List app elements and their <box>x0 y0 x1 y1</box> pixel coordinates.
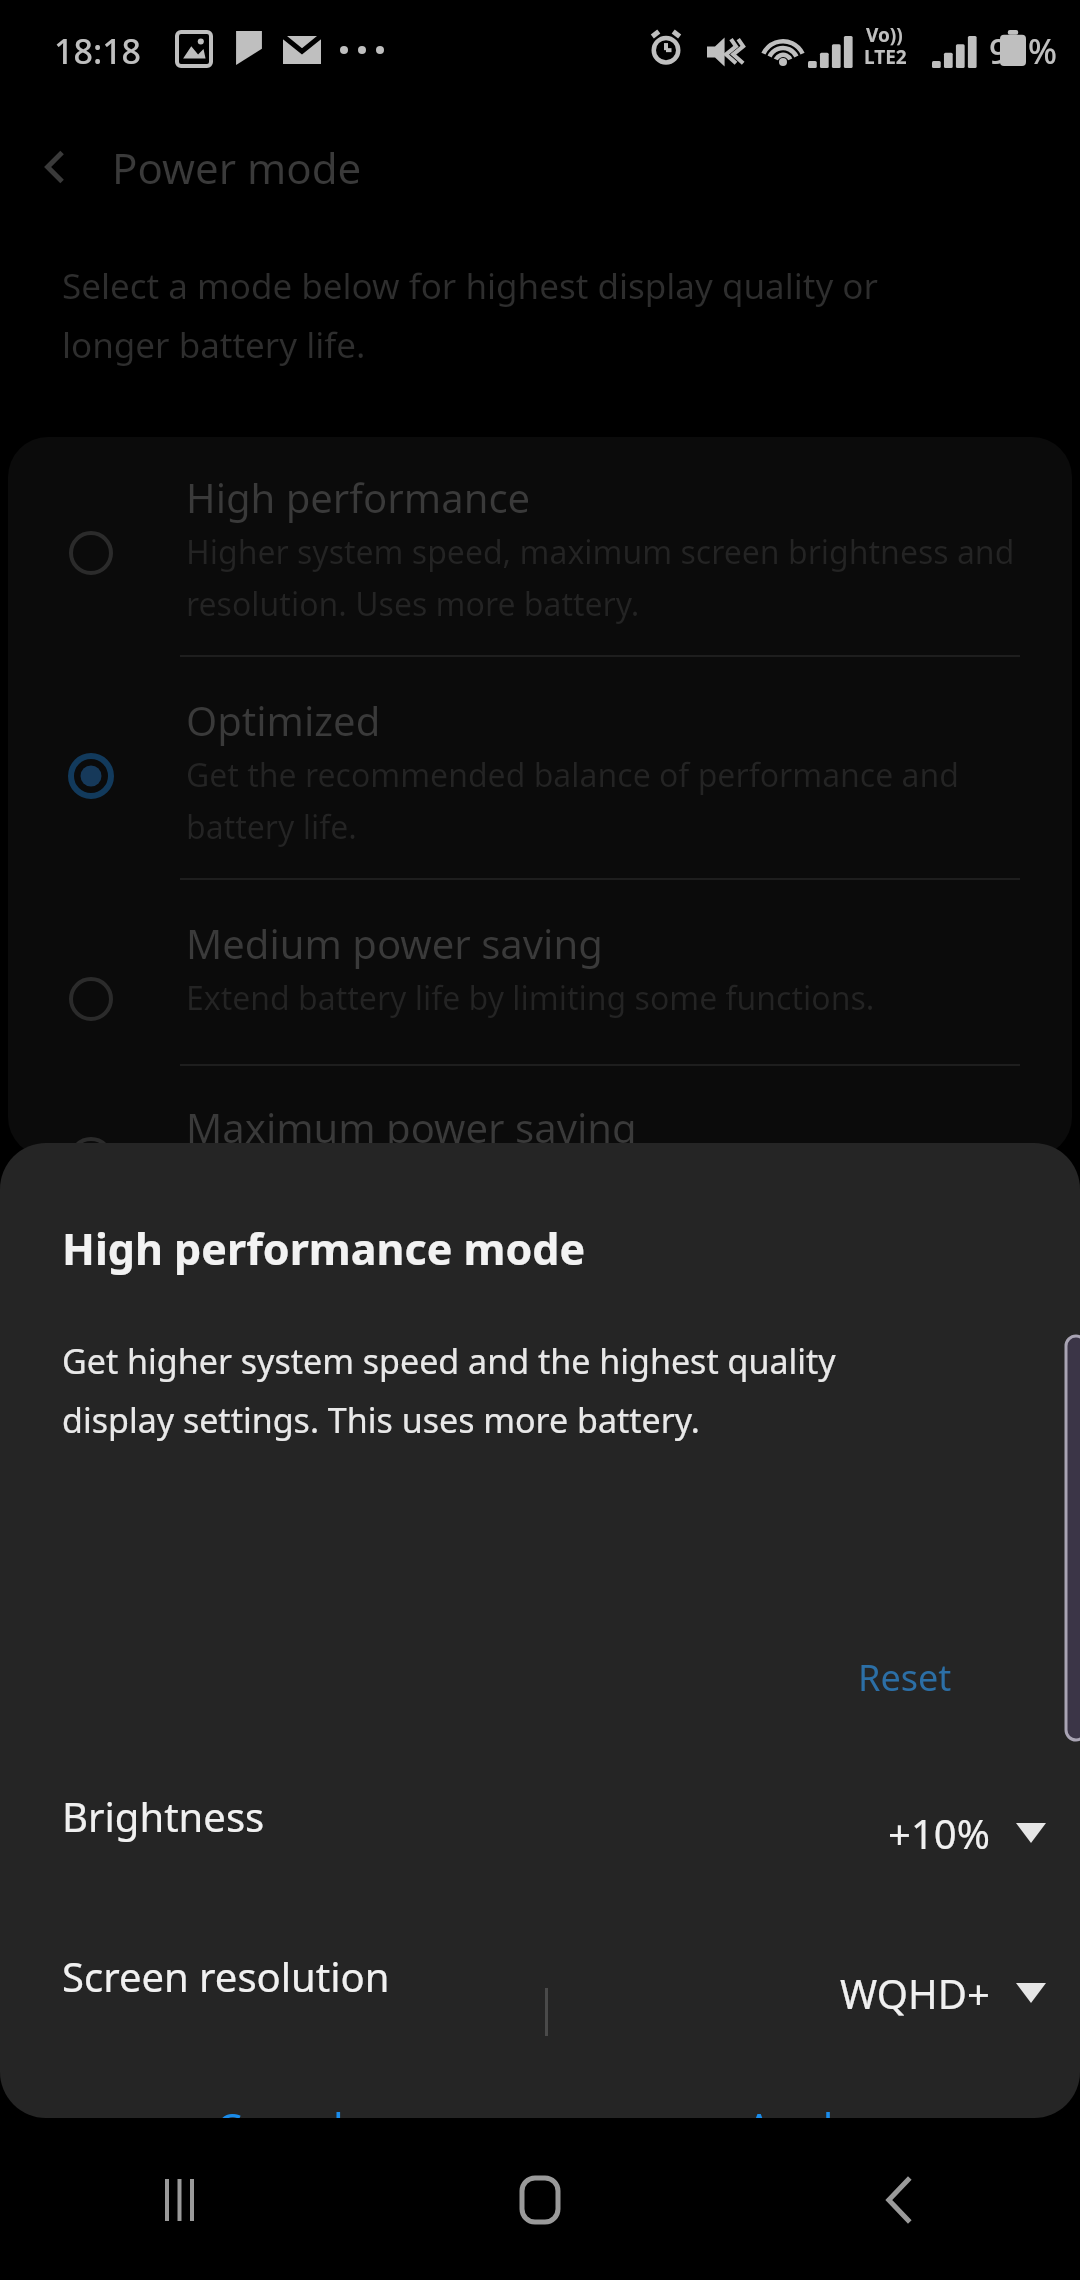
staticText: 18:18 <box>54 28 142 74</box>
staticText: Cancel <box>216 2100 344 2118</box>
staticText: Get higher system speed and the highest … <box>62 1338 1022 1443</box>
staticText: Screen resolution <box>62 1949 390 2003</box>
staticText: High performance mode <box>62 1219 586 1278</box>
staticText: Vo)) <box>866 22 903 48</box>
button[interactable]: Home <box>360 2120 720 2280</box>
staticText: Maximum power saving <box>186 1100 637 1154</box>
button[interactable]: Screen resolution <box>0 1923 1080 2063</box>
button[interactable]: Back <box>0 120 112 214</box>
staticText: Get the recommended balance of performan… <box>186 753 1046 848</box>
button[interactable]: Reset <box>858 1638 952 1716</box>
staticText: Extend battery life by limiting some fun… <box>186 976 1046 1020</box>
staticText: Brightness <box>62 1789 265 1843</box>
staticText: Optimized <box>186 693 381 747</box>
button[interactable]: Optimized <box>8 693 1072 873</box>
staticText: Reset <box>858 1653 952 1702</box>
button[interactable]: Recent apps <box>0 2120 360 2280</box>
staticText: Medium power saving <box>186 916 603 970</box>
staticText: Power mode <box>112 139 362 196</box>
staticText: Higher system speed, maximum screen brig… <box>186 530 1046 625</box>
staticText: LTE2 <box>864 44 907 70</box>
staticText: High performance <box>186 470 531 524</box>
staticText: WQHD+ <box>840 1966 990 2020</box>
staticText: Apply <box>746 2100 855 2118</box>
button[interactable]: Medium power saving <box>8 916 1072 1096</box>
staticText: +10% <box>888 1806 990 1860</box>
staticText: Select a mode below for highest display … <box>62 262 1042 368</box>
button[interactable]: High performance <box>8 470 1072 650</box>
button[interactable]: Brightness <box>0 1763 1080 1903</box>
button[interactable]: Maximum power saving <box>8 1100 1072 1220</box>
button[interactable]: Cancel <box>60 2073 500 2118</box>
button[interactable]: Apply <box>580 2073 1020 2118</box>
button[interactable]: Back <box>720 2120 1080 2280</box>
staticText: 91% <box>989 28 1057 74</box>
